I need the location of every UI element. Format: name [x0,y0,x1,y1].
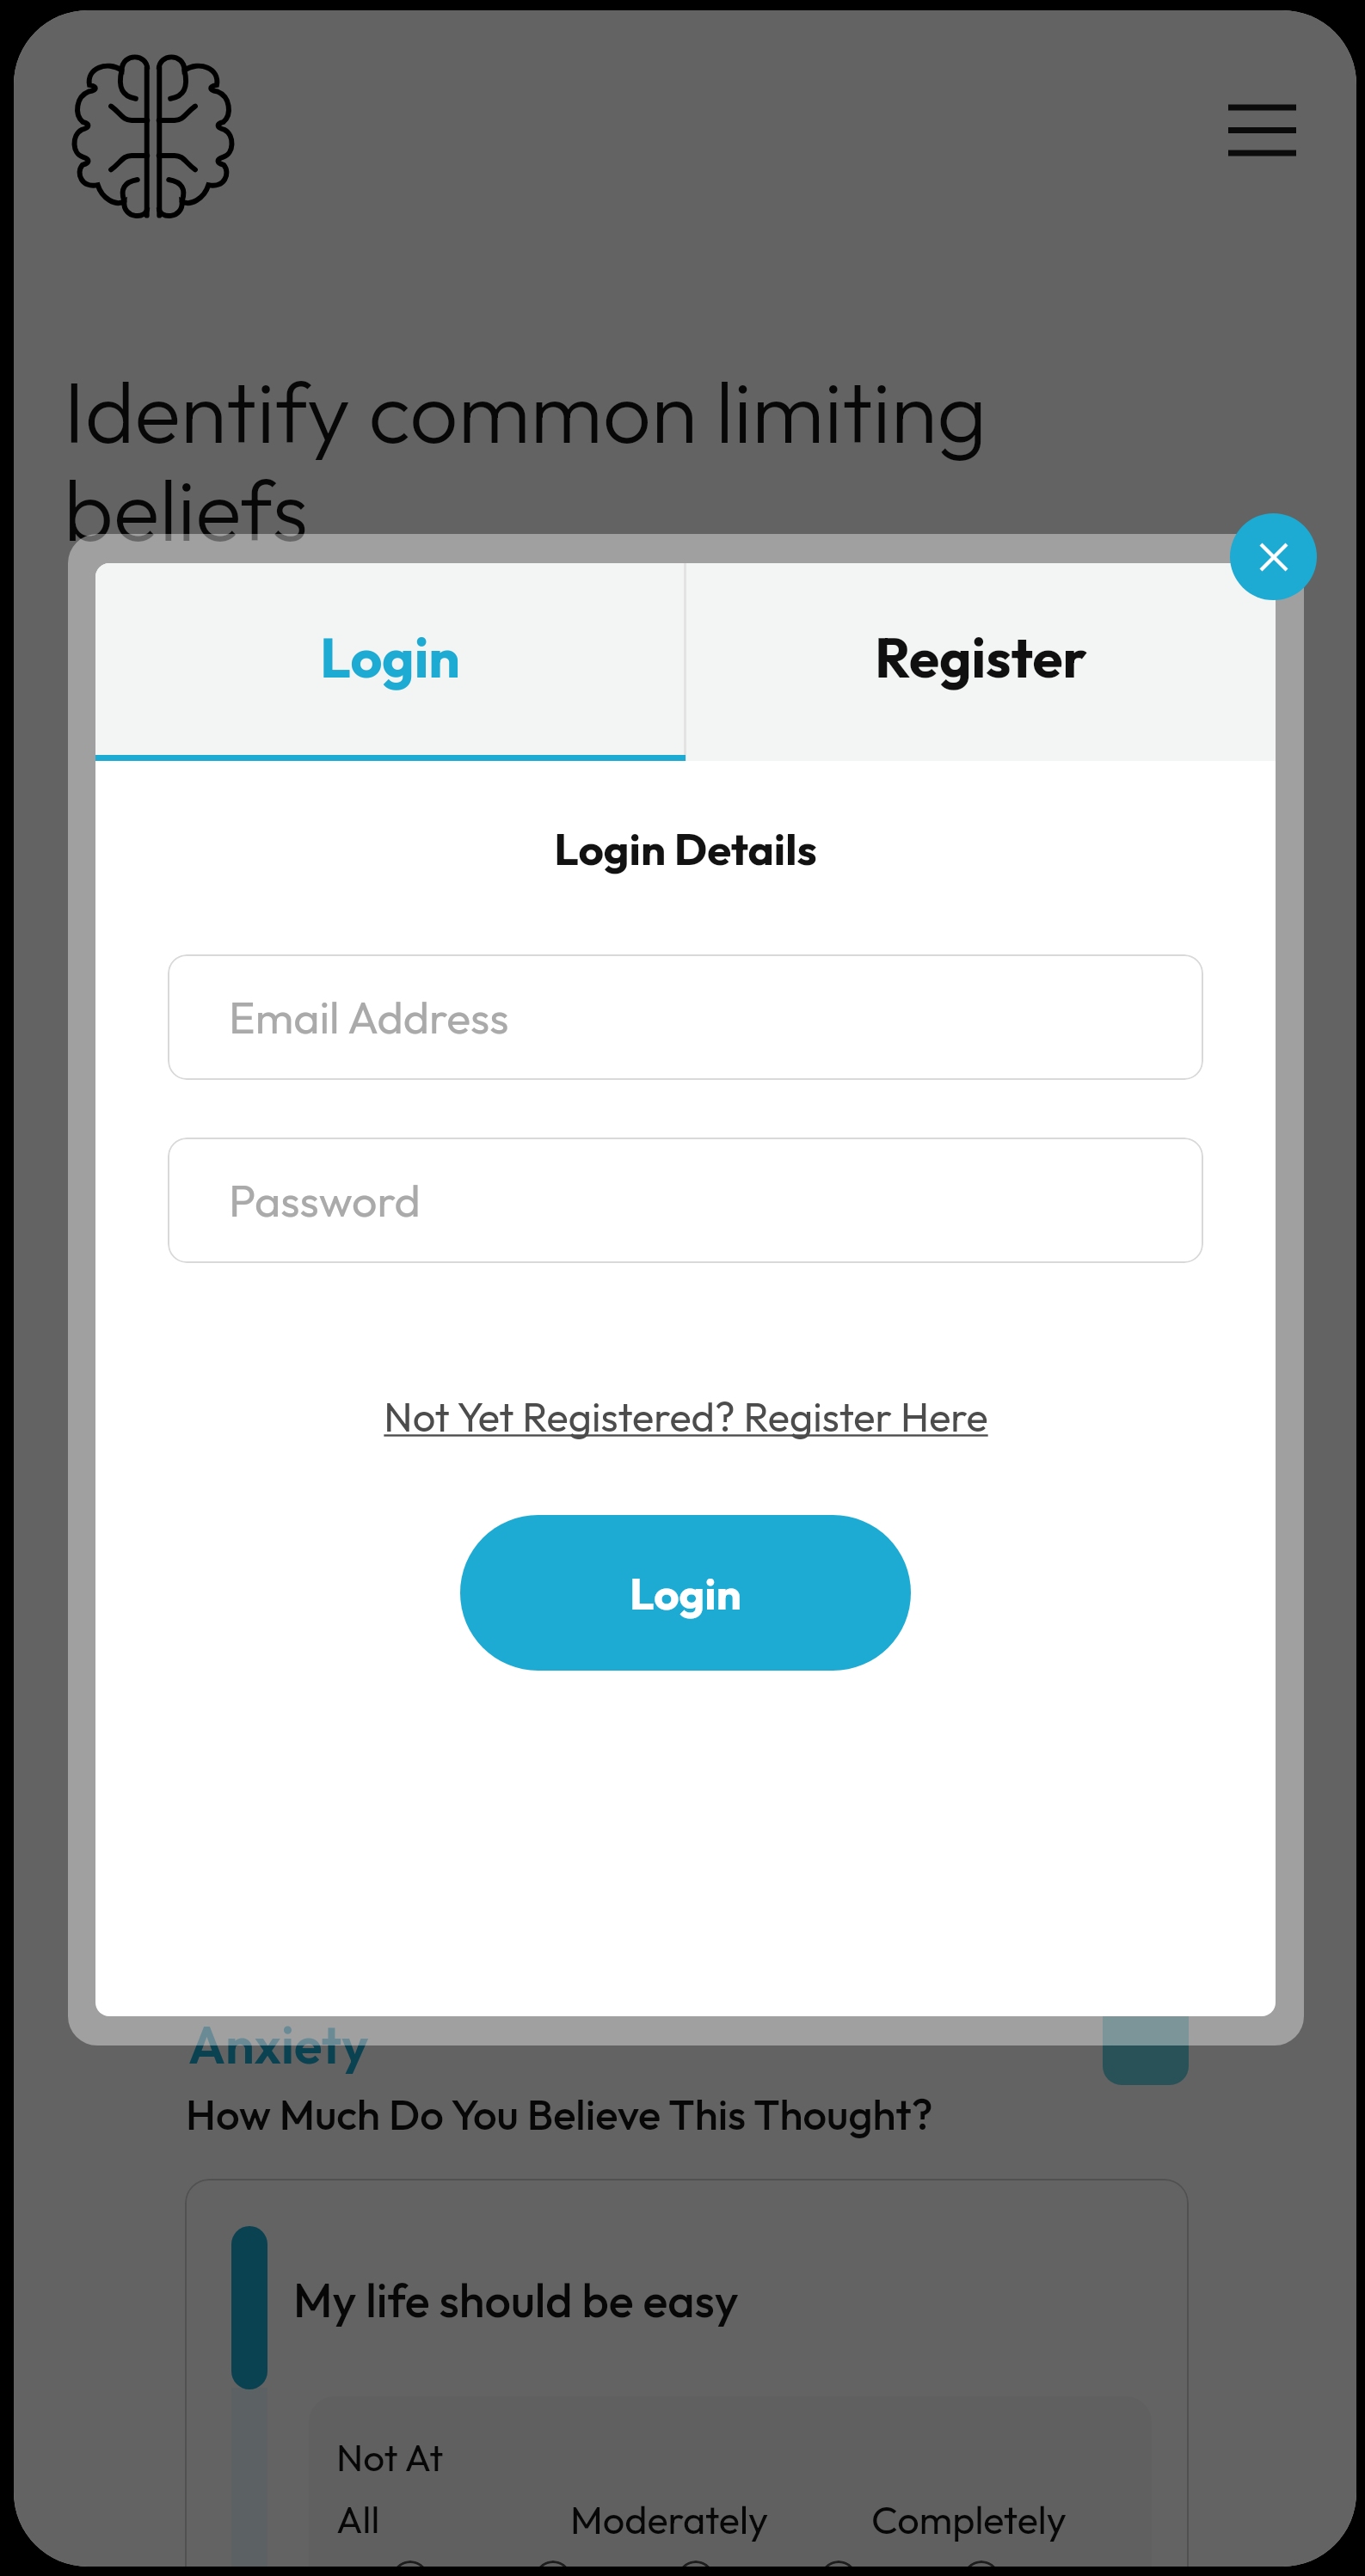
staticText: Moderately [570,2495,769,2544]
staticText: How Much Do You Believe This Thought? [186,2088,933,2141]
button[interactable]: Option 1 [391,2561,429,2567]
button[interactable]: Option 3 [677,2561,715,2567]
button[interactable]: Login [95,563,684,761]
staticText: Identify common limiting beliefs [64,358,1079,563]
button[interactable]: Option 2 [534,2561,572,2567]
staticText: Register [875,623,1087,692]
staticText: Login [630,1566,741,1621]
button[interactable]: Email Address [168,954,1203,1080]
button[interactable]: Not Yet Registered? Register Here [384,1391,988,1442]
staticText: My life should be easy [293,2271,739,2329]
staticText: Email Address [229,989,509,1046]
button[interactable]: Close [1230,513,1317,600]
staticText: Anxiety [188,2012,369,2077]
button[interactable]: Option 5 [962,2561,1000,2567]
button[interactable]: Menu [1193,71,1296,188]
staticText: Password [229,1172,421,1229]
staticText: Not At All [336,2433,444,2543]
staticText: Completely [871,2495,1067,2544]
button[interactable]: Login [460,1515,911,1671]
button[interactable]: Password [168,1138,1203,1263]
button[interactable]: Register [686,563,1276,761]
button[interactable]: Option 4 [820,2561,858,2567]
staticText: Login Details [554,821,817,876]
staticText: Login [320,623,460,692]
button[interactable]: Expand [1103,1971,1189,2085]
